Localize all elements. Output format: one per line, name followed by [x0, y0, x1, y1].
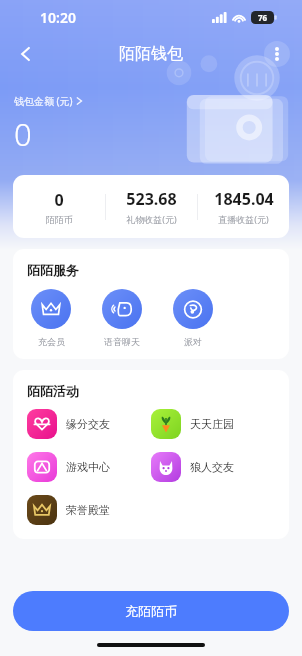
staticText: 荣誉殿堂 [66, 503, 110, 517]
staticText: 陌陌服务 [27, 262, 79, 278]
staticText: 狼人交友 [190, 460, 234, 474]
staticText: 陌陌活动 [27, 383, 79, 399]
staticText: 充会员 [38, 336, 65, 347]
staticText: 直播收益(元) [218, 213, 269, 225]
button[interactable]: 派对 [169, 289, 217, 347]
staticText: 10:20 [40, 8, 76, 27]
staticText: 缘分交友 [66, 417, 110, 431]
staticText: 语音聊天 [104, 336, 140, 347]
button[interactable]: 钱包金额 (元) [14, 94, 83, 155]
staticText: 礼物收益(元) [126, 213, 177, 225]
button[interactable]: 天天庄园 [151, 409, 275, 439]
button[interactable]: 0 [13, 189, 105, 225]
staticText: 1845.04 [214, 188, 274, 210]
staticText: 陌陌币 [46, 214, 73, 225]
staticText: 0 [54, 189, 64, 211]
staticText: 76 [258, 12, 268, 23]
button[interactable]: 充会员 [27, 289, 75, 347]
button[interactable]: 荣誉殿堂 [27, 495, 151, 525]
staticText: 钱包金额 (元) [14, 94, 73, 108]
button[interactable]: More options [264, 41, 290, 67]
button[interactable]: Back [8, 36, 44, 72]
button[interactable]: 523.68 [106, 188, 197, 225]
button[interactable]: 缘分交友 [27, 409, 151, 439]
button[interactable]: 1845.04 [198, 188, 289, 225]
staticText: 游戏中心 [66, 460, 110, 474]
staticText: 充陌陌币 [125, 603, 177, 619]
button[interactable]: 游戏中心 [27, 452, 151, 482]
button[interactable]: 狼人交友 [151, 452, 275, 482]
button[interactable]: 充陌陌币 [13, 591, 289, 631]
staticText: 天天庄园 [190, 417, 234, 431]
staticText: 派对 [184, 336, 202, 347]
staticText: 0 [14, 113, 32, 155]
staticText: 陌陌钱包 [119, 44, 183, 64]
staticText: 523.68 [126, 188, 177, 210]
button[interactable]: 语音聊天 [98, 289, 146, 347]
